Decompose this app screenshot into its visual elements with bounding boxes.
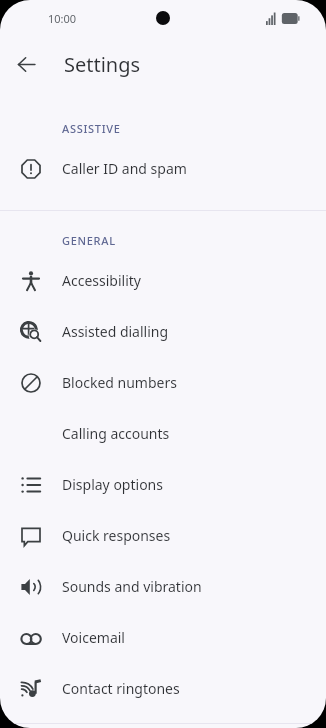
staticText: Display options xyxy=(62,475,163,494)
staticText: Contact ringtones xyxy=(62,679,180,698)
staticText: Calling accounts xyxy=(62,424,170,443)
button[interactable]: Calling accounts xyxy=(0,408,326,459)
button[interactable]: Sounds and vibration xyxy=(0,561,326,612)
staticText: Blocked numbers xyxy=(62,373,177,392)
staticText: Caller ID and spam xyxy=(62,159,187,178)
staticText: Sounds and vibration xyxy=(62,577,202,596)
staticText: ASSISTIVE xyxy=(62,121,121,136)
staticText: 10:00 xyxy=(48,11,77,26)
button[interactable]: Voicemail xyxy=(0,612,326,663)
staticText: Assisted dialling xyxy=(62,322,169,341)
button[interactable]: Contact ringtones xyxy=(0,663,326,714)
staticText: Settings xyxy=(64,51,141,78)
staticText: Quick responses xyxy=(62,526,171,545)
button[interactable]: Assisted dialling xyxy=(0,306,326,357)
button[interactable]: Back xyxy=(7,45,45,83)
button[interactable]: Quick responses xyxy=(0,510,326,561)
staticText: Voicemail xyxy=(62,628,125,647)
button[interactable]: Caller ID and spam xyxy=(0,143,326,194)
button[interactable]: Blocked numbers xyxy=(0,357,326,408)
button[interactable]: Accessibility xyxy=(0,255,326,306)
staticText: GENERAL xyxy=(62,233,116,248)
staticText: Accessibility xyxy=(62,271,141,290)
button[interactable]: Display options xyxy=(0,459,326,510)
